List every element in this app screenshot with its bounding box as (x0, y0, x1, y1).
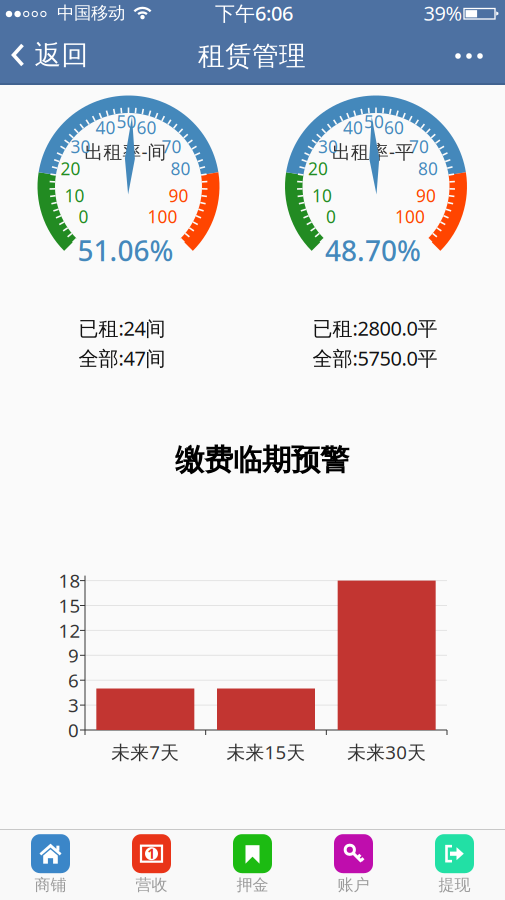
staticText: 9 (68, 643, 79, 668)
staticText: 48.70% (325, 232, 421, 269)
staticText: 1 (147, 845, 155, 862)
staticText: 40 (95, 116, 115, 139)
staticText: 70 (161, 135, 181, 158)
staticText: 提现 (438, 875, 470, 895)
staticText: 已租:24间 (78, 315, 165, 341)
staticText: 20 (308, 157, 328, 180)
staticText: 租赁管理 (198, 40, 306, 72)
staticText: 营收 (135, 875, 167, 895)
staticText: 押金 (236, 875, 268, 895)
button[interactable]: More (453, 51, 485, 61)
button[interactable]: 提现 (435, 834, 474, 895)
staticText: 12 (58, 618, 80, 643)
staticText: 出租率-间 (84, 139, 166, 164)
staticText: 出租率-平 (332, 139, 414, 164)
staticText: 100 (147, 205, 177, 228)
staticText: 51.06% (77, 232, 173, 269)
staticText: 50 (364, 110, 384, 133)
staticText: 100 (395, 205, 425, 228)
staticText: 39% (423, 0, 462, 26)
staticText: 账户 (337, 875, 369, 895)
staticText: 60 (136, 116, 156, 139)
staticText: 下午6:06 (215, 0, 293, 26)
staticText: 20 (60, 157, 80, 180)
staticText: 6 (68, 668, 79, 693)
staticText: 未来30天 (347, 740, 426, 764)
staticText: 缴费临期预警 (175, 442, 349, 478)
staticText: 30 (70, 135, 90, 158)
staticText: 60 (384, 116, 404, 139)
staticText: 中国移动 (57, 2, 125, 24)
staticText: 50 (116, 110, 136, 133)
staticText: 0 (78, 205, 88, 228)
staticText: 18 (58, 568, 80, 593)
staticText: 全部:5750.0平 (312, 345, 437, 371)
staticText: 返回 (34, 39, 88, 71)
staticText: 90 (168, 184, 188, 207)
staticText: 70 (409, 135, 429, 158)
staticText: 10 (312, 184, 332, 207)
staticText: 30 (318, 135, 338, 158)
staticText: 未来15天 (226, 740, 305, 764)
staticText: 40 (343, 116, 363, 139)
staticText: 全部:47间 (78, 345, 165, 371)
button[interactable]: 押金 (233, 834, 272, 895)
staticText: 3 (68, 693, 79, 717)
staticText: 未来7天 (111, 740, 179, 764)
button[interactable]: 1 (132, 834, 171, 895)
staticText: 商铺 (34, 875, 66, 895)
staticText: 0 (326, 205, 336, 228)
button[interactable]: 返回 (11, 39, 88, 71)
staticText: 0 (68, 718, 79, 742)
staticText: 80 (418, 157, 438, 180)
staticText: 15 (58, 593, 80, 618)
staticText: 已租:2800.0平 (312, 315, 437, 341)
button[interactable]: 账户 (334, 834, 373, 895)
staticText: 10 (64, 184, 84, 207)
staticText: 90 (416, 184, 436, 207)
button[interactable]: 商铺 (31, 834, 70, 895)
staticText: 80 (170, 157, 190, 180)
